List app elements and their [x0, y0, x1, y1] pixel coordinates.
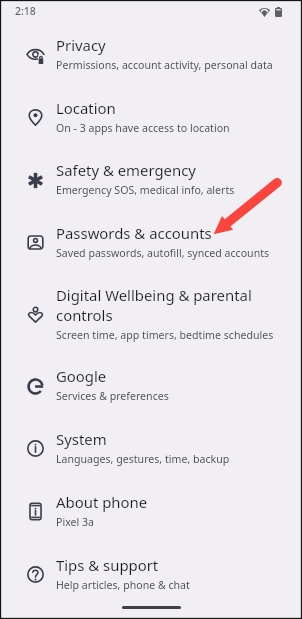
- button[interactable]: [2, 23, 300, 85]
- staticText: Safety & emergency: [56, 161, 196, 181]
- staticText: On - 3 apps have access to location: [56, 121, 230, 135]
- staticText: Google: [56, 367, 107, 387]
- button[interactable]: [2, 86, 300, 148]
- button[interactable]: [2, 273, 300, 356]
- button[interactable]: [2, 211, 300, 273]
- button[interactable]: [2, 354, 300, 416]
- staticText: Services & preferences: [56, 389, 169, 403]
- staticText: Privacy: [56, 36, 106, 56]
- other: Battery: [275, 7, 282, 17]
- staticText: Permissions, account activity, personal …: [56, 58, 273, 72]
- staticText: Emergency SOS, medical info, alerts: [56, 183, 235, 197]
- button[interactable]: [2, 148, 300, 210]
- staticText: Tips & support: [56, 556, 159, 576]
- staticText: Location: [56, 99, 116, 119]
- staticText: Languages, gestures, time, backup: [56, 452, 230, 466]
- button[interactable]: [2, 480, 300, 542]
- other: Wi-Fi signal: [259, 7, 270, 17]
- staticText: System: [56, 430, 107, 450]
- button[interactable]: [2, 417, 300, 479]
- staticText: Saved passwords, autofill, synced accoun…: [56, 246, 270, 260]
- button[interactable]: [2, 543, 300, 605]
- staticText: Passwords & accounts: [56, 224, 212, 244]
- staticText: Pixel 3a: [56, 515, 94, 529]
- staticText: Digital Wellbeing & parental controls: [56, 286, 284, 326]
- staticText: 2:18: [15, 4, 36, 18]
- staticText: About phone: [56, 493, 148, 513]
- staticText: Screen time, app timers, bedtime schedul…: [56, 328, 274, 342]
- staticText: Help articles, phone & chat: [56, 578, 190, 592]
